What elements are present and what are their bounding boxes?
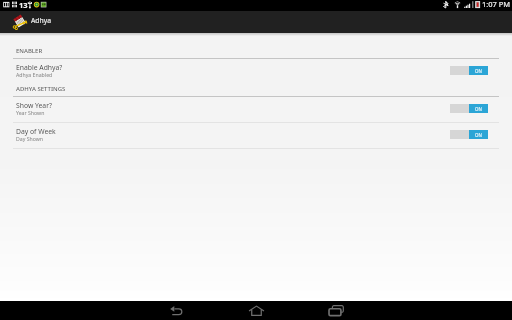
staticText: Enable Adhya? xyxy=(16,63,63,72)
staticText: ENABLER xyxy=(16,47,43,55)
button[interactable]: Toggle setting xyxy=(450,66,488,75)
staticText: Day Shown xyxy=(16,135,44,142)
button[interactable]: Home xyxy=(236,301,276,320)
staticText: ON xyxy=(475,132,482,138)
button[interactable]: Enable Adhya? xyxy=(0,59,512,84)
staticText: ADHYA SETTINGS xyxy=(16,85,66,93)
button[interactable]: Show Year? xyxy=(0,97,512,122)
staticText: 13 xyxy=(19,0,28,10)
staticText: ON xyxy=(475,106,482,112)
button[interactable]: Back xyxy=(156,301,196,320)
staticText: 1:07 PM xyxy=(482,0,511,9)
staticText: Show Year? xyxy=(16,101,52,110)
button[interactable]: Toggle setting xyxy=(450,104,488,113)
staticText: Adhya Enabled xyxy=(16,71,53,78)
staticText: Adhya xyxy=(31,16,52,25)
staticText: Day of Week xyxy=(16,127,56,136)
button[interactable]: Adhya xyxy=(0,11,512,33)
button[interactable]: Toggle setting xyxy=(450,130,488,139)
staticText: Year Shown xyxy=(16,109,45,116)
button[interactable]: Recent apps xyxy=(316,301,356,320)
staticText: ON xyxy=(475,68,482,74)
button[interactable]: Day of Week xyxy=(0,123,512,148)
